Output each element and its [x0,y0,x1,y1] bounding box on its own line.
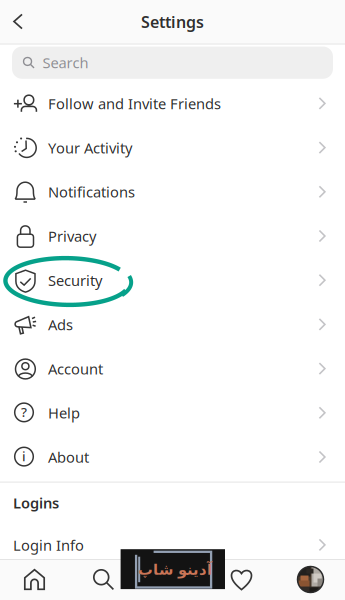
button[interactable]: ? [0,391,345,435]
button[interactable]: Your Activity [0,126,345,170]
button[interactable]: Profile [276,559,345,600]
button[interactable]: Activity [207,559,276,600]
button[interactable]: Follow and Invite Friends [0,81,345,126]
staticText: Search [42,53,88,72]
staticText: Help [48,403,80,423]
button[interactable]: Security [0,258,345,302]
staticText: Logins [13,493,59,512]
button[interactable]: i [0,435,345,479]
button[interactable]: Create [138,559,207,600]
staticText: Settings [141,11,204,32]
staticText: آدینو شاپ [138,561,212,578]
button[interactable]: Login Info [0,529,345,561]
staticText: ? [21,403,27,421]
button[interactable]: Privacy [0,214,345,258]
staticText: Your Activity [48,138,132,157]
staticText: About [48,447,89,467]
button[interactable]: Ads [0,302,345,347]
staticText: Ads [48,315,73,334]
staticText: i [22,447,26,465]
button[interactable]: Notifications [0,170,345,214]
staticText: Account [48,359,103,378]
button[interactable]: Search [69,559,138,600]
button[interactable]: Home [0,559,69,600]
staticText: Security [48,271,102,290]
staticText: Follow and Invite Friends [48,94,221,113]
staticText: Privacy [48,226,96,246]
button[interactable]: Account [0,347,345,391]
staticText: Notifications [48,182,135,202]
button[interactable]: Search [12,46,333,79]
button[interactable]: Back [3,3,33,39]
staticText: Login Info [13,535,84,555]
